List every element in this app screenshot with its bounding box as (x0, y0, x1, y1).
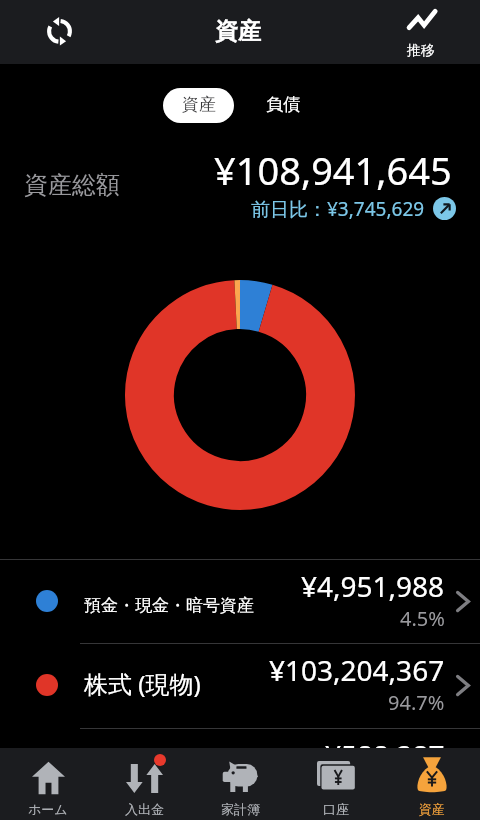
staticText: 株式 (現物) (84, 667, 201, 700)
staticText: 前日比：¥3,745,629 (251, 196, 425, 222)
staticText: 投資信託 (84, 752, 180, 782)
staticText: 0.5% (400, 774, 445, 801)
staticText: 4.5% (400, 605, 445, 632)
button[interactable]: 預金・現金・暗号資産 (0, 559, 480, 644)
staticText: 資産総額 (24, 170, 120, 200)
button[interactable]: 資産 (384, 748, 480, 820)
staticText: ¥4,951,988 (301, 567, 445, 605)
button[interactable]: 入出金 (96, 748, 192, 820)
staticText: 推移 (407, 42, 435, 60)
button[interactable]: 資産 (163, 88, 234, 123)
button[interactable]: 投資信託 (0, 728, 480, 813)
staticText: 負債 (266, 94, 300, 115)
button[interactable]: Sync (38, 9, 82, 53)
button[interactable]: 株式 (現物) (0, 643, 480, 728)
button[interactable]: 口座 (288, 748, 384, 820)
staticText: 入出金 (125, 801, 164, 817)
staticText: 資産 (215, 17, 261, 46)
button[interactable]: ホーム (0, 748, 96, 820)
staticText: 94.7% (388, 689, 445, 716)
staticText: 預金・現金・暗号資産 (84, 595, 254, 616)
staticText: ¥588,287 (325, 736, 445, 774)
staticText: ¥103,204,367 (269, 651, 445, 689)
staticText: 資産 (419, 801, 445, 817)
staticText: ホーム (28, 801, 68, 817)
button[interactable]: 推移 Trend (396, 4, 448, 58)
staticText: 家計簿 (221, 801, 260, 817)
button[interactable]: 家計簿 (192, 748, 288, 820)
staticText: 資産 (182, 94, 216, 115)
staticText: 口座 (323, 801, 349, 817)
button[interactable]: 負債 (250, 88, 315, 123)
staticText: ¥108,941,645 (214, 144, 452, 196)
